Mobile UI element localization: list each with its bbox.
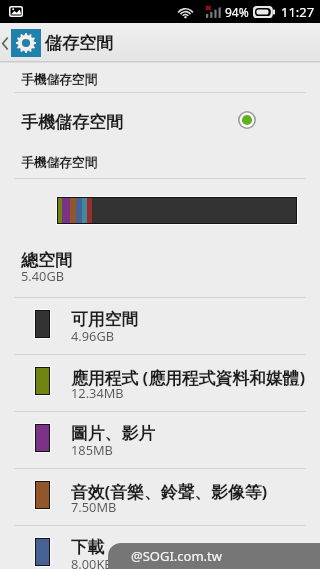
staticText: 4.96GB xyxy=(71,327,115,344)
staticText: 總空間 xyxy=(21,250,72,271)
staticText: 11:27 xyxy=(281,3,315,21)
staticText: 8.00KB xyxy=(71,555,113,569)
button[interactable]: 圖片、影片 xyxy=(0,412,320,468)
button[interactable]: 手機儲存空間 xyxy=(0,93,320,144)
staticText: 可用空間 xyxy=(71,309,139,330)
staticText: 12.34MB xyxy=(71,384,124,401)
button[interactable]: 應用程式 (應用程式資料和媒體) xyxy=(0,355,320,411)
staticText: 應用程式 (應用程式資料和媒體) xyxy=(71,366,306,389)
staticText: 7.50MB xyxy=(71,498,117,515)
staticText: 手機儲存空間 xyxy=(21,112,123,133)
staticText: 下載 xyxy=(71,537,105,558)
staticText: 185MB xyxy=(71,441,113,458)
staticText: 5.40GB xyxy=(21,267,65,284)
staticText: 94% xyxy=(225,4,249,20)
button[interactable]: 可用空間 xyxy=(0,298,320,354)
button[interactable]: 下載 xyxy=(0,526,320,569)
staticText: 音效(音樂、鈴聲、影像等) xyxy=(71,480,268,503)
staticText: 儲存空間 xyxy=(45,33,113,54)
button[interactable]: 音效(音樂、鈴聲、影像等) xyxy=(0,469,320,525)
staticText: 手機儲存空間 xyxy=(21,155,98,171)
staticText: 手機儲存空間 xyxy=(21,72,98,88)
button[interactable]: Back xyxy=(0,23,10,63)
staticText: @SOGI.com.tw xyxy=(131,547,222,565)
staticText: 圖片、影片 xyxy=(71,423,155,444)
